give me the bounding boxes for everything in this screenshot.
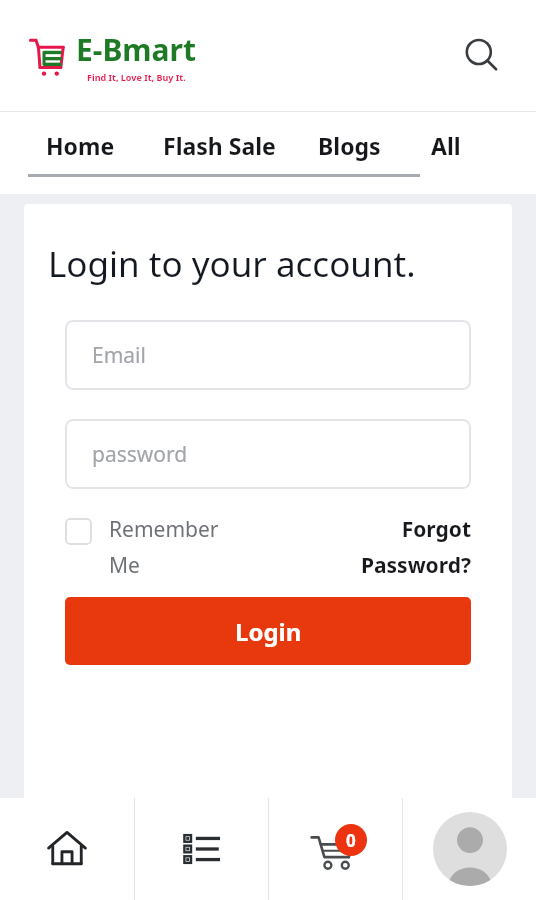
button[interactable]: Profile xyxy=(403,798,536,900)
button[interactable]: Home xyxy=(0,798,134,900)
button[interactable]: Email xyxy=(65,320,471,390)
button[interactable]: Categories xyxy=(135,798,268,900)
staticText: Remember Me xyxy=(109,515,239,579)
staticText: Login to your account. xyxy=(48,240,416,288)
button[interactable]: password xyxy=(65,419,471,489)
staticText: E-Bmart xyxy=(76,29,196,70)
button[interactable]: Cart xyxy=(269,798,402,900)
button[interactable]: All xyxy=(431,130,461,161)
button[interactable]: Remember Me xyxy=(65,515,336,579)
button[interactable]: Search xyxy=(454,28,510,84)
button[interactable]: Login xyxy=(65,597,471,665)
staticText: All xyxy=(431,130,461,161)
button[interactable]: Blogs xyxy=(318,130,381,161)
button[interactable]: Forgot Password? xyxy=(336,515,471,579)
staticText: Blogs xyxy=(318,130,381,161)
staticText: Login xyxy=(235,615,302,648)
staticText: Flash Sale xyxy=(163,130,276,161)
staticText: Email xyxy=(92,341,146,370)
staticText: password xyxy=(92,440,188,469)
button[interactable]: Home xyxy=(46,130,115,161)
staticText: Home xyxy=(46,130,115,161)
button[interactable]: Flash Sale xyxy=(163,130,276,161)
staticText: Forgot Password? xyxy=(336,515,471,579)
staticText: Find It, Love It, Buy It. xyxy=(87,71,186,83)
staticText: 0 xyxy=(346,829,356,852)
